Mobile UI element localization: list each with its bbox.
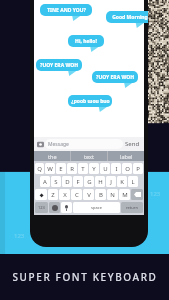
staticText: O: [125, 165, 130, 173]
staticText: N: [110, 191, 115, 199]
button[interactable]: label: [108, 151, 144, 161]
staticText: TINE AND YOU?: [47, 7, 86, 14]
staticText: M: [122, 191, 128, 199]
staticText: R: [70, 165, 74, 173]
button[interactable]: Good Morning: [106, 11, 148, 23]
button[interactable]: Q: [35, 163, 44, 174]
button[interactable]: A: [40, 176, 50, 187]
staticText: ¿poob ɯou buo: [71, 98, 110, 105]
staticText: 123: [14, 232, 25, 240]
staticText: Hi, hello!: [75, 38, 97, 45]
staticText: U: [103, 165, 108, 173]
button[interactable]: R: [67, 163, 77, 174]
staticText: Good Morning: [112, 14, 148, 21]
staticText: text: [84, 153, 94, 160]
button[interactable]: M: [119, 189, 130, 200]
staticText: T: [81, 165, 85, 173]
button[interactable]: J: [106, 176, 116, 187]
button[interactable]: TINE AND YOU?: [40, 4, 92, 16]
staticText: Z: [51, 191, 55, 199]
staticText: C: [75, 191, 79, 199]
button[interactable]: Backspace: [131, 189, 143, 200]
button[interactable]: T: [78, 163, 88, 174]
staticText: space: [91, 205, 102, 210]
button[interactable]: B: [95, 189, 106, 200]
button[interactable]: Y: [89, 163, 99, 174]
button[interactable]: the: [34, 151, 70, 161]
staticText: return: [126, 205, 138, 210]
button[interactable]: L: [128, 176, 138, 187]
staticText: I: [115, 165, 118, 173]
staticText: K: [120, 178, 124, 186]
button[interactable]: K: [117, 176, 127, 187]
staticText: J: [110, 178, 112, 186]
staticText: E: [59, 165, 63, 173]
button[interactable]: text: [71, 151, 107, 161]
button[interactable]: H: [95, 176, 105, 187]
button[interactable]: return: [121, 202, 143, 213]
button[interactable]: Send: [125, 140, 140, 148]
button[interactable]: W: [45, 163, 55, 174]
button[interactable]: Message: [45, 139, 123, 149]
staticText: A: [43, 178, 47, 186]
button[interactable]: O: [122, 163, 132, 174]
button[interactable]: Camera: [36, 140, 45, 149]
staticText: Q: [37, 165, 42, 173]
button[interactable]: ¿poob ɯou buo: [68, 95, 112, 107]
staticText: B: [99, 191, 103, 199]
button[interactable]: D: [62, 176, 72, 187]
staticText: F: [76, 178, 80, 186]
button[interactable]: Emoji: [49, 202, 60, 213]
staticText: X: [63, 191, 67, 199]
staticText: G: [87, 178, 92, 186]
staticText: the: [48, 153, 57, 160]
button[interactable]: P: [133, 163, 143, 174]
button[interactable]: U: [100, 163, 110, 174]
button[interactable]: Hi, hello!: [68, 35, 104, 47]
staticText: P: [136, 165, 140, 173]
staticText: SUPER FONT KEYBOARD: [12, 270, 158, 284]
staticText: Send: [125, 140, 140, 148]
button[interactable]: ⬥: [35, 189, 47, 200]
staticText: S: [54, 178, 58, 186]
button[interactable]: Z: [48, 189, 58, 200]
button[interactable]: space: [73, 202, 120, 213]
staticText: H: [98, 178, 103, 186]
button[interactable]: N: [107, 189, 118, 200]
button[interactable]: G: [84, 176, 94, 187]
staticText: D: [65, 178, 70, 186]
button[interactable]: F: [73, 176, 83, 187]
staticText: ?UOY ERA WOH: [96, 74, 134, 81]
button[interactable]: Voice input: [61, 202, 72, 213]
button[interactable]: I: [111, 163, 121, 174]
button[interactable]: E: [56, 163, 66, 174]
staticText: L: [131, 178, 135, 186]
staticText: Message: [48, 141, 69, 148]
button[interactable]: V: [83, 189, 94, 200]
button[interactable]: 123: [35, 202, 48, 213]
button[interactable]: ?UOY ERA WOH: [36, 59, 82, 71]
staticText: V: [87, 191, 91, 199]
button[interactable]: X: [59, 189, 70, 200]
button[interactable]: ?UOY ERA WOH: [92, 71, 138, 83]
staticText: 123: [38, 205, 45, 210]
staticText: ⬥: [39, 192, 44, 198]
button[interactable]: S: [51, 176, 61, 187]
staticText: ?UOY ERA WOH: [40, 62, 78, 69]
staticText: W: [47, 165, 53, 173]
staticText: 123: [150, 190, 161, 198]
staticText: label: [120, 153, 133, 160]
staticText: Y: [92, 165, 96, 173]
button[interactable]: C: [71, 189, 82, 200]
